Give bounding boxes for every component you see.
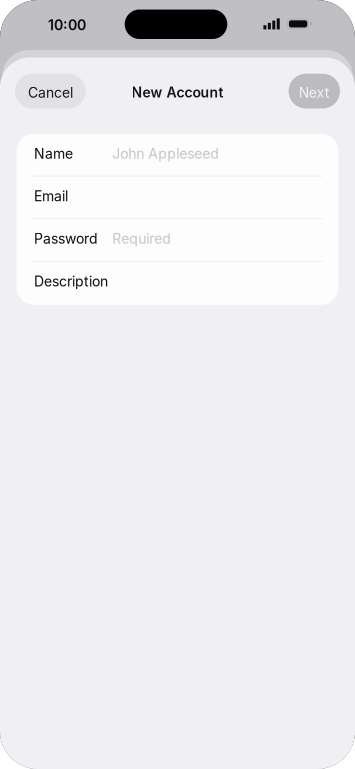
staticText: Required bbox=[112, 230, 171, 247]
staticText: New Account bbox=[131, 84, 223, 101]
staticText: John Appleseed bbox=[112, 145, 219, 162]
staticText: Description bbox=[34, 273, 108, 290]
staticText: Name bbox=[34, 145, 73, 162]
button[interactable]: Next bbox=[289, 74, 340, 108]
button[interactable]: Cancel bbox=[15, 74, 86, 108]
button[interactable]: Email bbox=[16, 176, 338, 219]
button[interactable]: Password bbox=[16, 219, 338, 262]
staticText: Password bbox=[34, 230, 98, 247]
staticText: Cancel bbox=[28, 84, 73, 101]
staticText: Next bbox=[299, 84, 330, 101]
staticText: Email bbox=[34, 188, 68, 205]
staticText: 10:00 bbox=[48, 17, 86, 34]
button[interactable]: Description bbox=[16, 262, 338, 305]
button[interactable]: Name bbox=[16, 134, 338, 176]
